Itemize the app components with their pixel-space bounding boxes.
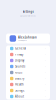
button[interactable]: Storage <box>6 87 50 93</box>
staticText: Apple ID, iCloud <box>18 40 27 41</box>
staticText: General <box>15 47 26 50</box>
button[interactable]: Sounds <box>6 63 50 69</box>
staticText: Storage <box>15 89 25 92</box>
button[interactable]: About <box>6 93 50 99</box>
staticText: Display <box>15 59 24 62</box>
staticText: Sounds <box>15 65 25 68</box>
staticText: Battery <box>15 77 24 80</box>
button[interactable]: Alex Johnson <box>6 33 50 43</box>
button[interactable]: Battery <box>6 75 50 81</box>
staticText: Focus <box>15 71 22 74</box>
button[interactable]: Privacy <box>6 51 50 57</box>
button[interactable]: Display <box>6 57 50 63</box>
staticText: Manage preferences <box>20 15 36 17</box>
staticText: Alex Johnson <box>18 36 37 39</box>
staticText: Settings <box>22 10 33 13</box>
staticText: Health <box>15 83 24 86</box>
staticText: Privacy <box>15 53 23 56</box>
button[interactable]: General <box>6 45 50 51</box>
staticText: About <box>15 95 24 98</box>
button[interactable]: Focus <box>6 69 50 75</box>
button[interactable]: Health <box>6 81 50 87</box>
